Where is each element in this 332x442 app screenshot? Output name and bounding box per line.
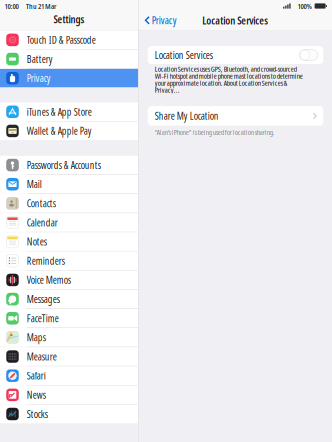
button[interactable]: Calendar	[0, 213, 138, 232]
staticText: Contacts	[27, 196, 56, 210]
staticText: Notes	[27, 235, 47, 248]
staticText: Messages	[27, 292, 60, 306]
button[interactable]: iTunes & App Store	[0, 102, 138, 121]
button[interactable]: Passwords & Accounts	[0, 156, 138, 174]
button[interactable]: Privacy	[0, 69, 138, 87]
button[interactable]: Stocks	[0, 405, 138, 423]
staticText: Voice Memos	[27, 273, 71, 287]
staticText: Reminders	[27, 254, 65, 268]
staticText: Privacy	[27, 71, 51, 85]
button[interactable]: Location Services	[148, 46, 323, 64]
staticText: Wallet & Apple Pay	[27, 124, 92, 138]
button[interactable]: FaceTime	[0, 309, 138, 328]
button[interactable]: Touch ID & Passcode	[0, 31, 138, 49]
button[interactable]: Voice Memos	[0, 271, 138, 289]
button[interactable]: Mail	[0, 175, 138, 193]
staticText: Safari	[27, 369, 46, 382]
staticText: FaceTime	[27, 311, 59, 325]
staticText: Location Services	[202, 13, 268, 27]
staticText: iTunes & App Store	[27, 105, 92, 119]
button[interactable]: Maps	[0, 328, 138, 347]
staticText: Stocks	[27, 407, 48, 421]
staticText: Touch ID & Passcode	[27, 33, 96, 47]
button[interactable]: Battery	[0, 50, 138, 68]
staticText: “Alan’s iPhone” is being used for locati…	[155, 129, 275, 136]
staticText: Mail	[27, 177, 42, 191]
button[interactable]: Reminders	[0, 251, 138, 270]
button[interactable]: Safari	[0, 366, 138, 385]
staticText: Share My Location	[155, 109, 219, 123]
button[interactable]: News	[0, 386, 138, 404]
button[interactable]: Measure	[0, 347, 138, 366]
staticText: News	[27, 388, 46, 402]
staticText: Privacy	[152, 13, 177, 27]
staticText: 10:00	[5, 1, 19, 11]
button[interactable]: Wallet & Apple Pay	[0, 122, 138, 140]
button[interactable]: Share My Location	[148, 106, 323, 126]
staticText: Location Services	[155, 48, 213, 62]
button[interactable]: Contacts	[0, 194, 138, 213]
staticText: Location Services uses GPS, Bluetooth, a…	[155, 65, 303, 93]
staticText: Calendar	[27, 216, 58, 229]
staticText: Thu 21 Mar	[26, 1, 56, 11]
button[interactable]: Notes	[0, 232, 138, 251]
staticText: Battery	[27, 52, 53, 66]
staticText: Measure	[27, 350, 57, 363]
staticText: Settings	[53, 12, 84, 26]
button[interactable]: Messages	[0, 290, 138, 308]
button[interactable]: Privacy	[139, 12, 177, 29]
staticText: Maps	[27, 331, 46, 344]
staticText: Passwords & Accounts	[27, 158, 101, 172]
staticText: 100%	[298, 1, 312, 11]
